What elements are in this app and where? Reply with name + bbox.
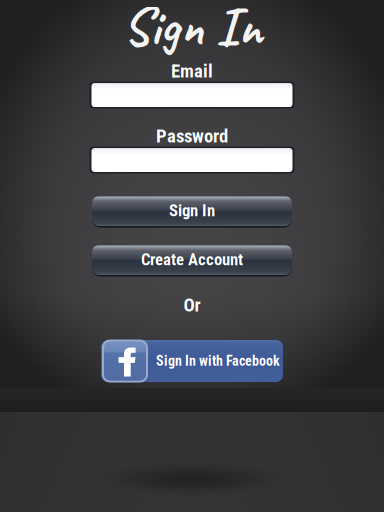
- button[interactable]: Sign In: [92, 195, 292, 227]
- staticText: Or: [183, 294, 200, 316]
- button[interactable]: Sign In with Facebook: [101, 339, 283, 382]
- staticText: Sign In with Facebook: [156, 353, 280, 369]
- staticText: Email: [171, 60, 213, 82]
- staticText: Create Account: [141, 250, 243, 269]
- button[interactable]: Create Account: [92, 244, 292, 276]
- staticText: Password: [156, 125, 228, 147]
- staticText: Sign In: [169, 201, 215, 220]
- staticText: Sign In: [122, 0, 261, 61]
